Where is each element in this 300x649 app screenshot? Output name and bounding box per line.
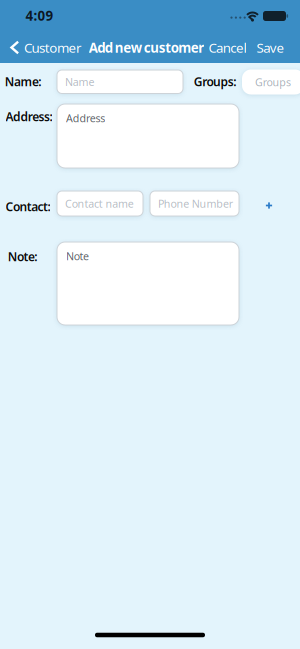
staticText: Save (256, 39, 284, 56)
staticText: Contact name (65, 196, 134, 211)
button[interactable]: Phone Number (150, 191, 239, 216)
staticText: 4:09 (25, 7, 53, 24)
button[interactable]: Address (57, 104, 239, 168)
staticText: Customer (24, 39, 82, 56)
button[interactable]: Note (57, 242, 239, 325)
button[interactable]: Groups (242, 69, 300, 94)
button[interactable]: Cancel (208, 39, 246, 56)
staticText: Address: (6, 108, 52, 124)
staticText: Cancel (208, 39, 246, 56)
staticText: Phone Number (158, 196, 233, 211)
staticText: Name: (5, 73, 41, 89)
staticText: Name (65, 75, 94, 89)
button[interactable] (262, 198, 276, 212)
button[interactable]: Contact name (57, 191, 143, 216)
staticText: Groups: (194, 73, 236, 89)
staticText: Address (66, 111, 105, 125)
button[interactable]: Name (57, 70, 183, 93)
button[interactable]: Save (256, 39, 284, 56)
staticText: Groups (255, 75, 291, 89)
staticText: Note (66, 249, 89, 263)
button[interactable]: Customer (10, 39, 82, 56)
staticText: Note: (8, 248, 37, 264)
staticText: Contact: (6, 198, 50, 214)
staticText: Add new customer (89, 39, 204, 56)
